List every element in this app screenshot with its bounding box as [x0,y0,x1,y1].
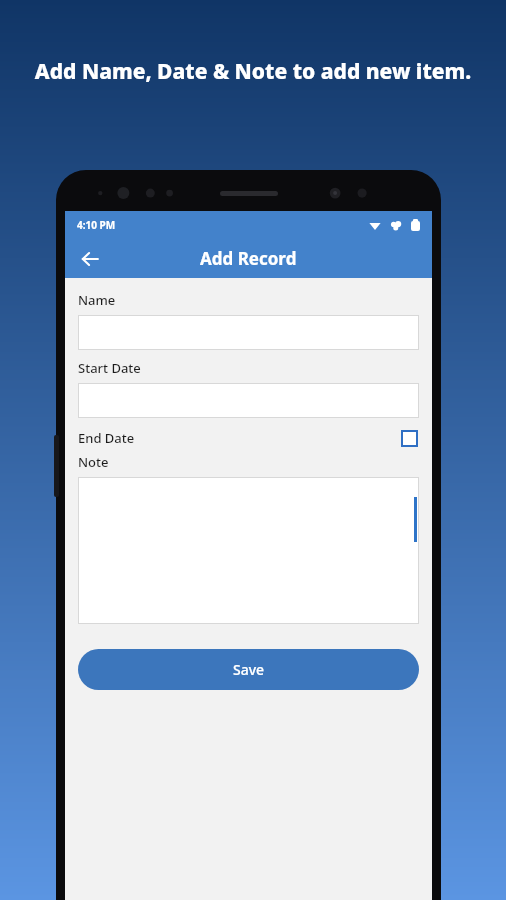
button[interactable]: End Date checkbox [399,428,419,448]
staticText: 4:10 PM [77,218,116,232]
staticText: Start Date [78,359,141,377]
button[interactable]: Save [78,649,419,690]
button[interactable]: Back [71,240,109,278]
staticText: Save [233,660,265,679]
staticText: End Date [78,429,135,447]
button[interactable] [78,383,419,418]
button[interactable] [78,315,419,350]
staticText: Add Record [200,247,297,270]
staticText: Note [78,453,109,471]
staticText: Add Name, Date & Note to add new item. [30,57,476,86]
staticText: Name [78,291,116,309]
button[interactable] [78,477,419,624]
